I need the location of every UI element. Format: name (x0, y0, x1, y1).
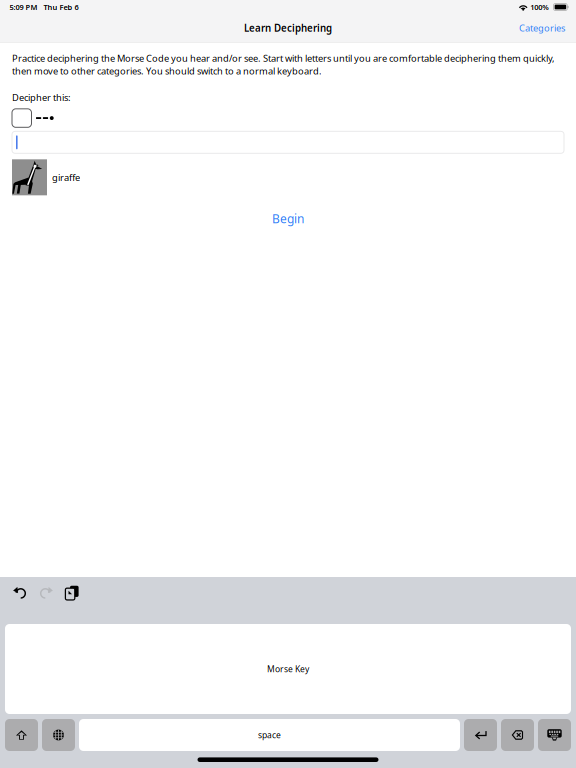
staticText: space (258, 729, 281, 741)
staticText: 100% (530, 2, 549, 12)
button[interactable]: space (79, 719, 460, 751)
button[interactable]: Undo (7, 580, 33, 606)
staticText: Decipher this: (12, 91, 71, 104)
staticText: Learn Deciphering (244, 21, 332, 35)
button[interactable]: Hide keyboard (538, 719, 571, 751)
staticText: Practice deciphering the Morse Code you … (12, 52, 555, 77)
staticText: Categories (519, 22, 565, 34)
staticText: Morse Key (267, 663, 309, 675)
button[interactable]: Redo (33, 580, 59, 606)
button[interactable]: Morse Key (5, 624, 571, 714)
button[interactable]: Begin (258, 205, 318, 232)
staticText: giraffe (52, 171, 80, 184)
button[interactable]: Categories (512, 18, 572, 38)
button[interactable]: Next keyboard (42, 719, 75, 751)
staticText: 5:09 PM (9, 2, 37, 12)
button[interactable]: Play Morse code (12, 109, 31, 127)
staticText: Begin (272, 210, 304, 227)
button[interactable]: Delete (501, 719, 534, 751)
button[interactable]: Return (464, 719, 497, 751)
button[interactable]: Shift (5, 719, 38, 751)
button[interactable] (12, 131, 564, 153)
button[interactable]: Paste (59, 580, 85, 606)
staticText: Thu Feb 6 (43, 2, 78, 12)
